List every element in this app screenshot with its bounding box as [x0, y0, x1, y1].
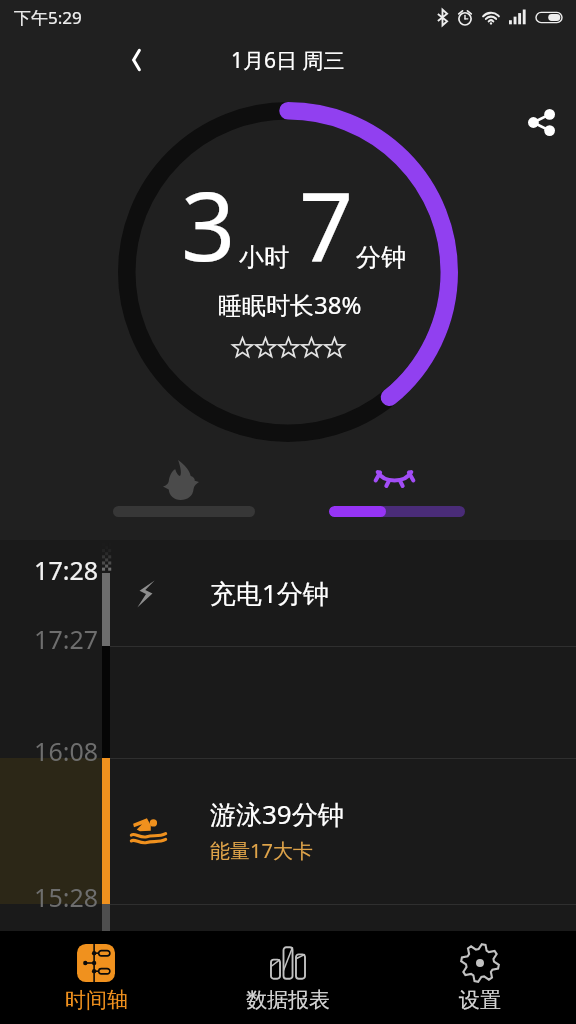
staticText: 7 — [299, 159, 354, 288]
button[interactable]: Sleep — [329, 460, 465, 517]
button[interactable]: 时间轴 — [0, 931, 192, 1024]
staticText: 1月6日 周三 — [231, 46, 345, 75]
staticText: 充电1分钟 — [210, 575, 329, 611]
button[interactable]: 游泳39分钟 — [0, 758, 576, 904]
button[interactable]: 设置 — [384, 931, 576, 1024]
staticText: 3 — [181, 159, 236, 288]
staticText: 睡眠时长38% — [218, 288, 362, 321]
staticText: 16:08 — [34, 734, 98, 768]
staticText: 游泳39分钟 — [210, 796, 344, 832]
button[interactable]: 充电1分钟 — [0, 540, 576, 646]
staticText: 能量17大卡 — [210, 837, 313, 864]
staticText: 下午5:29 — [14, 6, 82, 29]
staticText: 时间轴 — [65, 987, 128, 1013]
staticText: 17:27 — [34, 622, 98, 656]
button[interactable]: 数据报表 — [192, 931, 384, 1024]
staticText: 数据报表 — [246, 987, 330, 1013]
staticText: 分钟 — [356, 242, 406, 273]
staticText: 17:28 — [34, 553, 98, 587]
staticText: 15:28 — [34, 880, 98, 914]
staticText: 设置 — [459, 987, 501, 1013]
button[interactable]: Calories — [113, 460, 255, 517]
button[interactable]: Back — [114, 38, 158, 82]
staticText: 小时 — [239, 242, 289, 273]
button[interactable]: Share — [519, 100, 563, 144]
